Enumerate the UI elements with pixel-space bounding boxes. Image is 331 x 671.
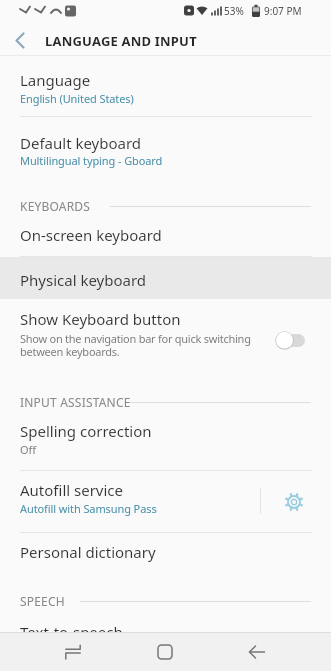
staticText: KEYBOARDS xyxy=(20,198,91,214)
staticText: Default keyboard xyxy=(20,133,142,153)
button[interactable] xyxy=(143,632,187,671)
button[interactable] xyxy=(0,257,331,299)
button[interactable] xyxy=(0,618,331,632)
button[interactable] xyxy=(0,214,331,256)
staticText: 53% xyxy=(224,4,244,18)
button[interactable] xyxy=(0,471,331,532)
staticText: Show on the navigation bar for quick swi… xyxy=(20,331,251,346)
staticText: Show Keyboard button xyxy=(20,309,181,329)
staticText: INPUT ASSISTANCE xyxy=(20,394,131,410)
button[interactable] xyxy=(0,533,331,578)
staticText: Text-to-speech xyxy=(20,622,123,642)
staticText: Multilingual typing - Gboard xyxy=(20,153,163,168)
staticText: 9:07 PM xyxy=(264,4,302,18)
staticText: Personal dictionary xyxy=(20,542,156,562)
staticText: LANGUAGE AND INPUT xyxy=(45,32,197,50)
staticText: Language xyxy=(20,70,91,90)
staticText: between keyboards. xyxy=(20,344,120,359)
staticText: Autofill service xyxy=(20,480,124,500)
staticText: SPEECH xyxy=(20,593,65,609)
button[interactable] xyxy=(0,299,331,366)
staticText: Physical keyboard xyxy=(20,270,147,290)
button[interactable] xyxy=(280,488,308,516)
staticText: On-screen keyboard xyxy=(20,225,162,245)
staticText: Off xyxy=(20,442,37,457)
staticText: Spelling correction xyxy=(20,421,152,441)
staticText: English (United States) xyxy=(20,91,134,106)
button[interactable] xyxy=(0,24,44,56)
button[interactable] xyxy=(0,410,331,470)
button[interactable] xyxy=(0,58,331,116)
staticText: Autofill with Samsung Pass xyxy=(20,501,157,516)
button[interactable] xyxy=(51,632,95,671)
button[interactable] xyxy=(0,117,331,179)
button[interactable] xyxy=(235,632,279,671)
